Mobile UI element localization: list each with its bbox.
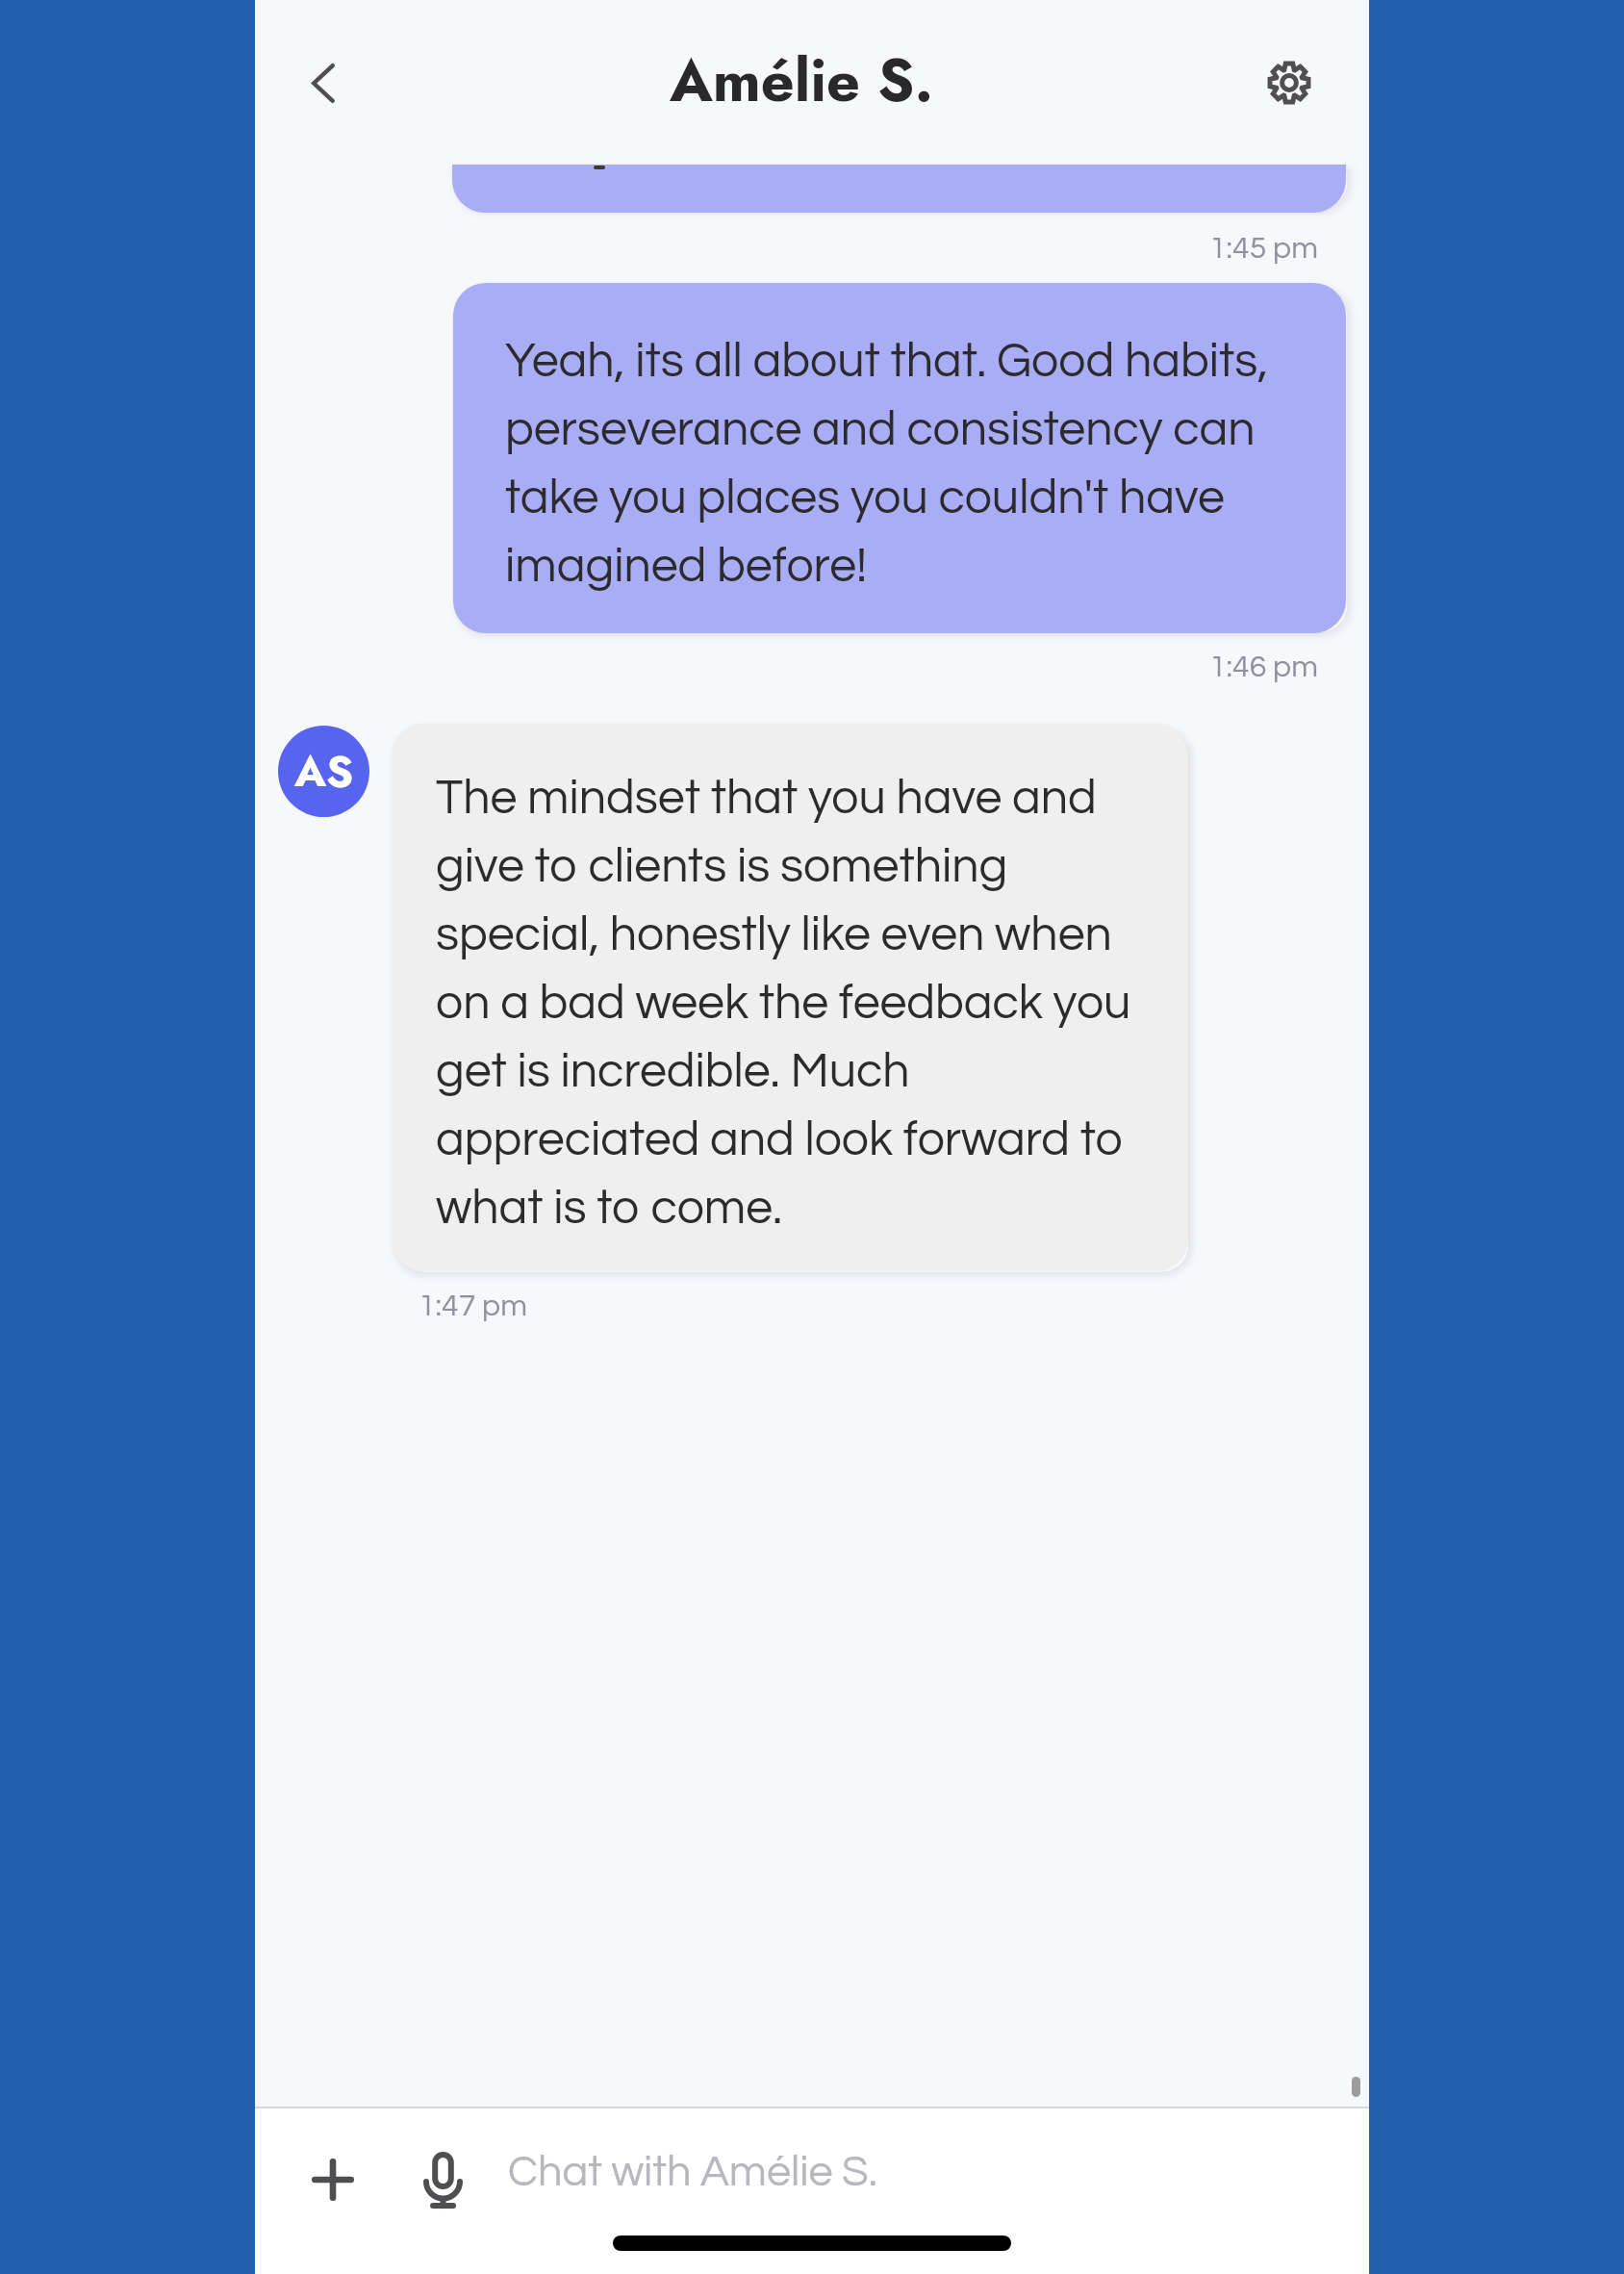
button[interactable]: Settings bbox=[1239, 33, 1339, 133]
button[interactable]: The mindset that you have and give to cl… bbox=[392, 724, 1188, 1271]
staticText: AS bbox=[294, 740, 354, 803]
button[interactable]: Add attachment bbox=[283, 2130, 383, 2230]
button[interactable]: Yeah, its all about that. Good habits, p… bbox=[453, 283, 1346, 633]
button[interactable]: Back bbox=[273, 33, 373, 133]
staticText: The mindset that you have and give to cl… bbox=[436, 758, 1131, 1237]
staticText: 1:47 pm bbox=[419, 1290, 527, 1322]
staticText: 1:45 pm bbox=[1209, 233, 1318, 265]
staticText: 1:46 pm bbox=[1209, 652, 1318, 683]
staticText: Amélie S. bbox=[670, 38, 934, 123]
staticText: Chat with Amélie S. bbox=[508, 2150, 877, 2194]
button[interactable]: Chat with Amélie S. bbox=[491, 2122, 1106, 2237]
button[interactable]: Voice message bbox=[393, 2130, 493, 2230]
staticText: Yeah, its all about that. Good habits, p… bbox=[505, 321, 1269, 595]
